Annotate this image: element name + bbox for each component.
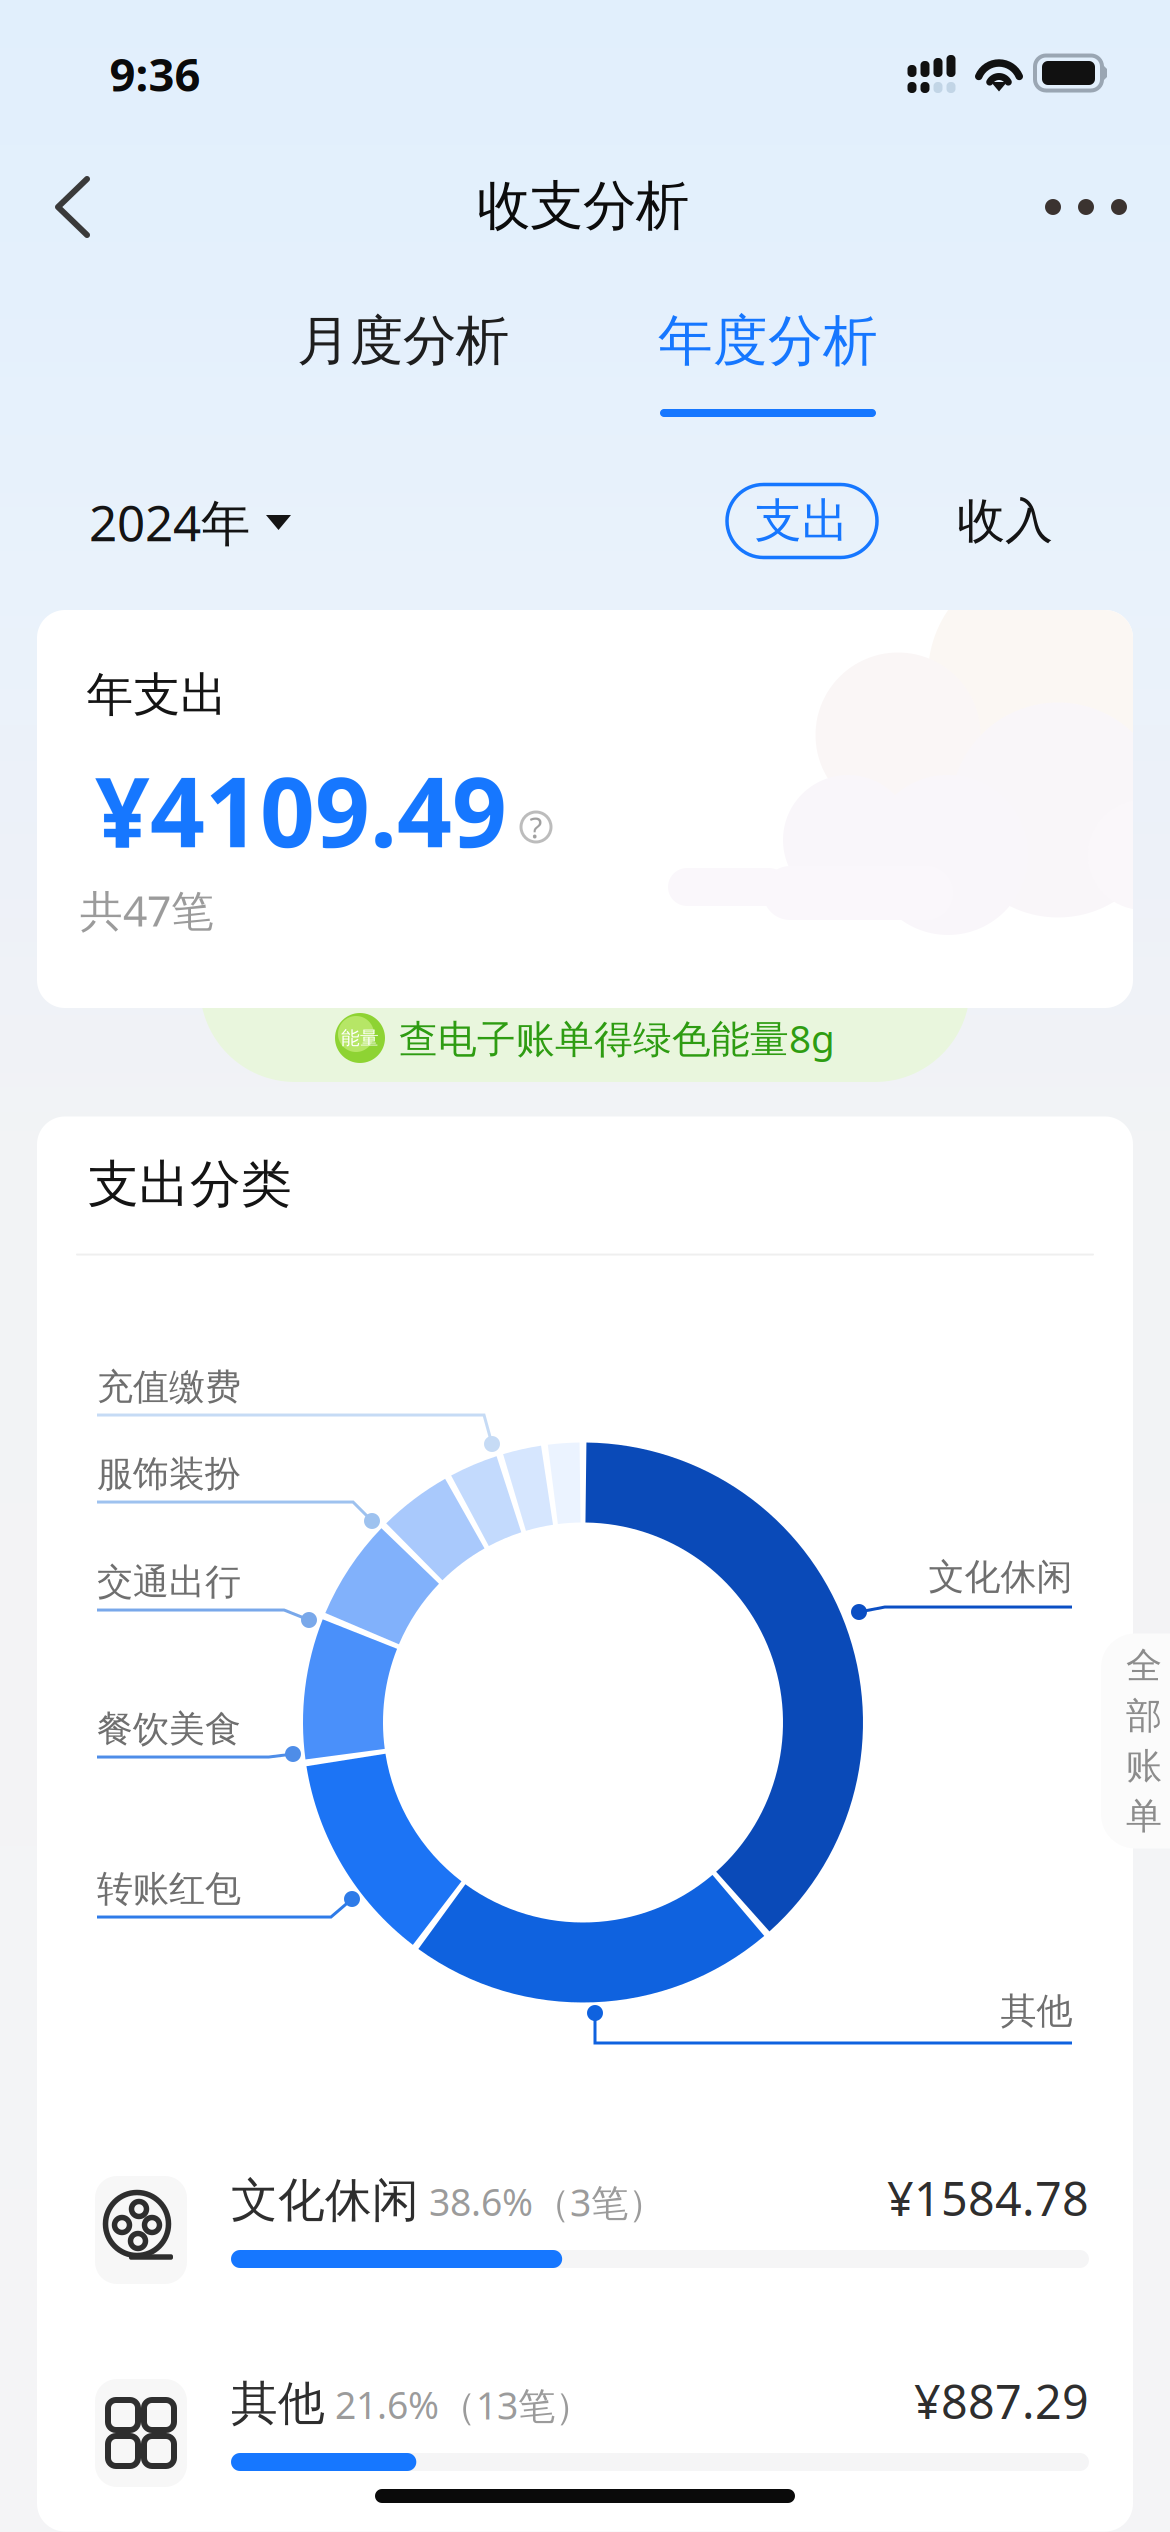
- staticText: 2024年: [89, 489, 250, 555]
- button[interactable]: More options: [1016, 155, 1156, 259]
- button[interactable]: 文化休闲: [0, 0, 1170, 2532]
- staticText: 服饰装扮: [97, 1452, 241, 1496]
- button[interactable]: Back: [19, 153, 127, 261]
- staticText: 支出: [755, 492, 849, 550]
- staticText: 账: [1126, 1744, 1162, 1788]
- staticText: 转账红包: [97, 1867, 241, 1911]
- staticText: 收支分析: [477, 173, 689, 239]
- staticText: 9:36: [109, 44, 200, 104]
- staticText: 文化休闲: [231, 2172, 419, 2229]
- staticText: 查电子账单得绿色能量8g: [399, 1012, 835, 1064]
- staticText: 全: [1126, 1644, 1162, 1688]
- button[interactable]: 收入: [930, 484, 1080, 557]
- staticText: 能量: [341, 1026, 379, 1049]
- button[interactable]: 年度分析: [618, 296, 918, 458]
- staticText: 其他: [1000, 1989, 1072, 2033]
- staticText: ¥4109.49: [95, 746, 507, 874]
- button[interactable]: 其他: [0, 0, 1170, 2532]
- staticText: 年度分析: [658, 307, 878, 374]
- staticText: 充值缴费: [97, 1365, 241, 1409]
- staticText: 文化休闲: [928, 1555, 1072, 1599]
- staticText: （3笔）: [533, 2177, 665, 2227]
- staticText: 21.6%: [325, 2380, 439, 2429]
- staticText: 收入: [957, 491, 1053, 550]
- staticText: 部: [1126, 1694, 1162, 1738]
- staticText: ¥887.29: [914, 2370, 1089, 2432]
- staticText: （13笔）: [439, 2380, 592, 2430]
- button[interactable]: 全部账单: [1101, 1633, 1170, 1848]
- button[interactable]: 支出: [727, 484, 877, 557]
- staticText: 交通出行: [97, 1560, 241, 1604]
- staticText: 支出分类: [88, 1153, 292, 1216]
- staticText: ¥1584.78: [887, 2167, 1089, 2229]
- staticText: 单: [1126, 1794, 1162, 1838]
- staticText: 月度分析: [297, 308, 509, 374]
- staticText: ?: [529, 807, 542, 846]
- staticText: 其他: [231, 2375, 325, 2432]
- button[interactable]: 2024年: [89, 474, 349, 570]
- button[interactable]: 能量: [200, 892, 970, 1082]
- button[interactable]: 月度分析: [253, 276, 553, 406]
- staticText: 38.6%: [419, 2177, 533, 2226]
- staticText: 餐饮美食: [97, 1707, 241, 1751]
- staticText: 年支出: [86, 666, 227, 724]
- staticText: 共47笔: [80, 882, 214, 938]
